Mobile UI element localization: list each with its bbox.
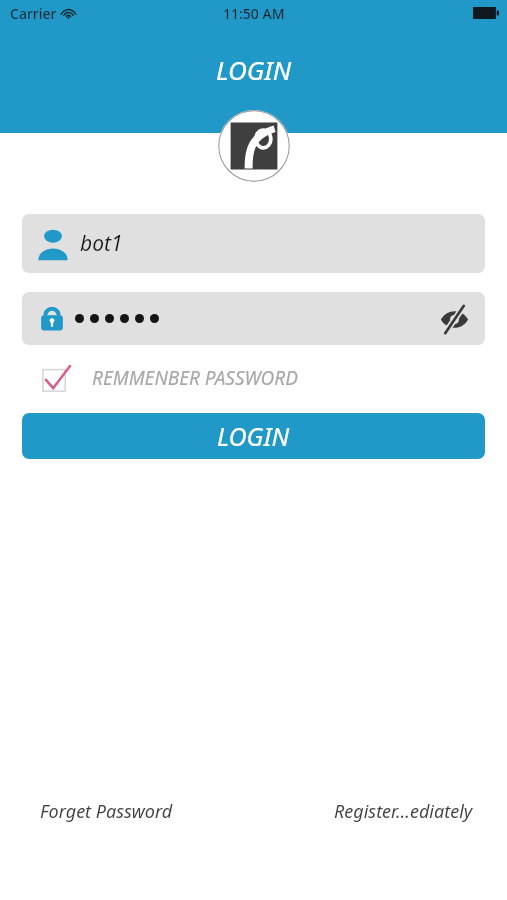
staticText: 11:50 AM — [223, 4, 285, 23]
button[interactable]: REMMENBER PASSWORD — [22, 359, 298, 397]
staticText: Carrier — [10, 4, 57, 23]
button[interactable]: Forget Password — [36, 795, 177, 828]
staticText: LOGIN — [216, 52, 292, 87]
button[interactable]: Show password — [437, 302, 471, 336]
button[interactable]: Register…ediately — [330, 795, 477, 828]
button[interactable]: Show password — [22, 292, 485, 345]
staticText: bot1 — [80, 229, 123, 258]
button[interactable]: bot1 — [22, 214, 485, 273]
staticText: LOGIN — [217, 419, 290, 453]
staticText: REMMENBER PASSWORD — [92, 365, 298, 391]
button[interactable]: LOGIN — [22, 413, 485, 459]
